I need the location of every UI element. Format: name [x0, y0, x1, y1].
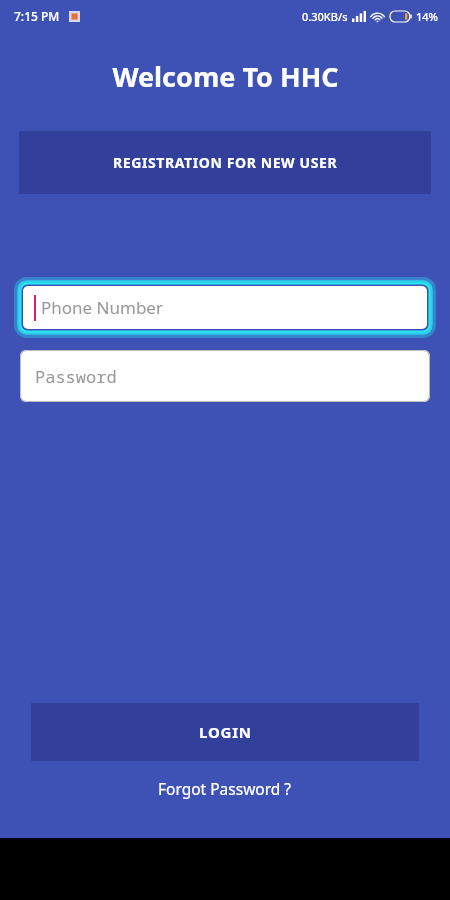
- staticText: LOGIN: [199, 722, 252, 742]
- button[interactable]: REGISTRATION FOR NEW USER: [19, 131, 431, 194]
- staticText: 0.30KB/s: [302, 9, 348, 24]
- staticText: Phone Number: [41, 296, 163, 319]
- button[interactable]: Forgot Password ?: [0, 773, 450, 803]
- staticText: Welcome To HHC: [112, 58, 339, 95]
- button[interactable]: LOGIN: [31, 703, 419, 761]
- staticText: 7:15 PM: [14, 8, 60, 24]
- button[interactable]: Password: [20, 350, 430, 402]
- staticText: Password: [35, 365, 117, 388]
- staticText: REGISTRATION FOR NEW USER: [113, 153, 338, 172]
- button[interactable]: Phone Number: [19, 282, 431, 333]
- staticText: Forgot Password ?: [158, 778, 292, 799]
- staticText: 14%: [416, 9, 438, 24]
